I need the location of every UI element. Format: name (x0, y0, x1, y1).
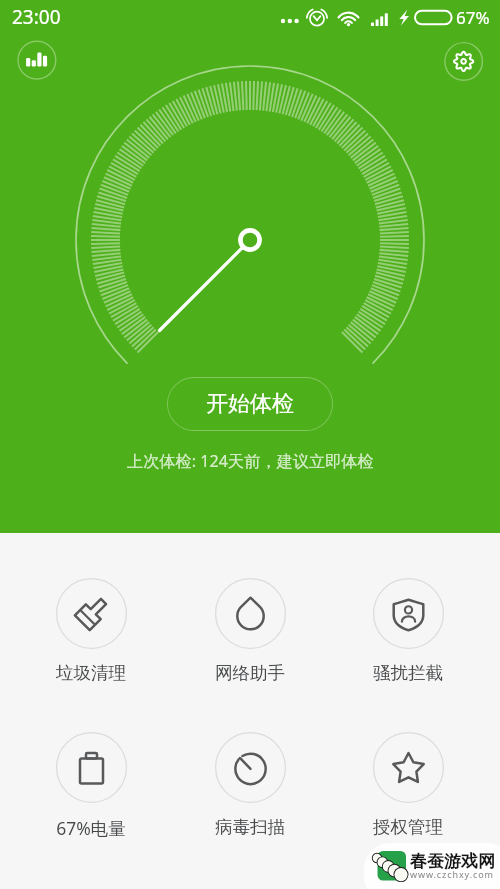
staticText: 23:00 (12, 4, 61, 30)
staticText: 春蚕游戏网 (410, 851, 495, 872)
button[interactable]: 病毒扫描 (190, 732, 310, 838)
button[interactable]: 骚扰拦截 (348, 578, 468, 684)
button[interactable]: Settings (444, 42, 484, 82)
staticText: 网络助手 (215, 662, 285, 684)
staticText: 67% (456, 6, 490, 29)
staticText: 开始体检 (206, 390, 294, 418)
button[interactable]: Usage statistics (17, 40, 57, 80)
staticText: 上次体检: 124天前，建议立即体检 (127, 450, 374, 472)
button[interactable]: 开始体检 (167, 377, 333, 431)
button[interactable]: 垃圾清理 (31, 578, 151, 684)
button[interactable]: 67%电量 (31, 732, 151, 840)
staticText: www.czchxy.com (410, 868, 494, 880)
button[interactable]: 授权管理 (348, 732, 468, 838)
staticText: 垃圾清理 (56, 662, 126, 684)
staticText: 授权管理 (373, 816, 443, 838)
staticText: 病毒扫描 (215, 816, 285, 838)
staticText: 67%电量 (56, 816, 126, 840)
button[interactable]: 网络助手 (190, 578, 310, 684)
staticText: 骚扰拦截 (373, 662, 443, 684)
